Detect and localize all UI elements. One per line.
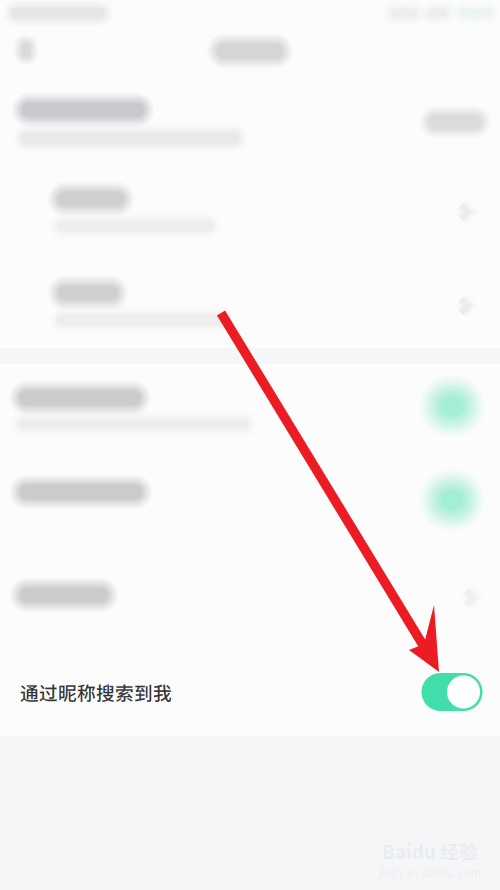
button[interactable]: 通过昵称搜索到我 <box>0 644 500 736</box>
button[interactable]: Back <box>2 28 50 72</box>
button[interactable] <box>0 168 500 258</box>
button[interactable] <box>0 258 500 348</box>
button[interactable] <box>0 364 500 458</box>
button[interactable] <box>0 80 500 168</box>
staticText: Baidu 经验 <box>382 837 478 864</box>
button[interactable] <box>0 458 500 552</box>
button[interactable] <box>0 552 500 644</box>
staticText: 通过昵称搜索到我 <box>20 678 172 705</box>
